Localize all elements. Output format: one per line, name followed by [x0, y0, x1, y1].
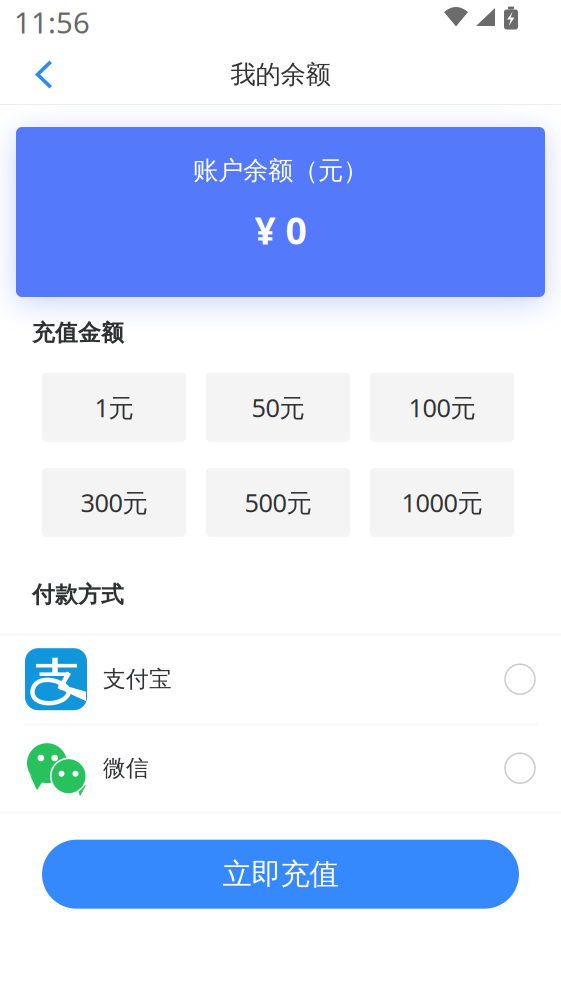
- staticText: 100元: [408, 390, 475, 424]
- button[interactable]: 1元: [42, 373, 186, 442]
- staticText: 账户余额（元）: [193, 155, 368, 186]
- button[interactable]: 50元: [206, 373, 350, 442]
- button[interactable]: 100元: [370, 373, 514, 442]
- button[interactable]: 1000元: [370, 468, 514, 537]
- staticText: 500元: [244, 485, 311, 519]
- staticText: 微信: [103, 754, 149, 782]
- staticText: 付款方式: [32, 581, 124, 609]
- staticText: 我的余额: [230, 59, 330, 90]
- staticText: 11:56: [14, 2, 90, 41]
- button[interactable]: 立即充值: [42, 840, 519, 909]
- staticText: 支付宝: [103, 665, 172, 693]
- button[interactable]: 500元: [206, 468, 350, 537]
- staticText: 充值金额: [32, 319, 124, 347]
- staticText: ¥ 0: [254, 205, 306, 255]
- staticText: 1000元: [401, 485, 482, 519]
- button[interactable]: 支付宝: [0, 635, 561, 724]
- button[interactable]: 微信: [0, 725, 561, 812]
- staticText: 立即充值: [222, 856, 338, 892]
- button[interactable]: 300元: [42, 468, 186, 537]
- staticText: 300元: [80, 485, 147, 519]
- staticText: 1元: [94, 390, 133, 424]
- button[interactable]: Back: [0, 44, 88, 105]
- staticText: 50元: [251, 390, 304, 424]
